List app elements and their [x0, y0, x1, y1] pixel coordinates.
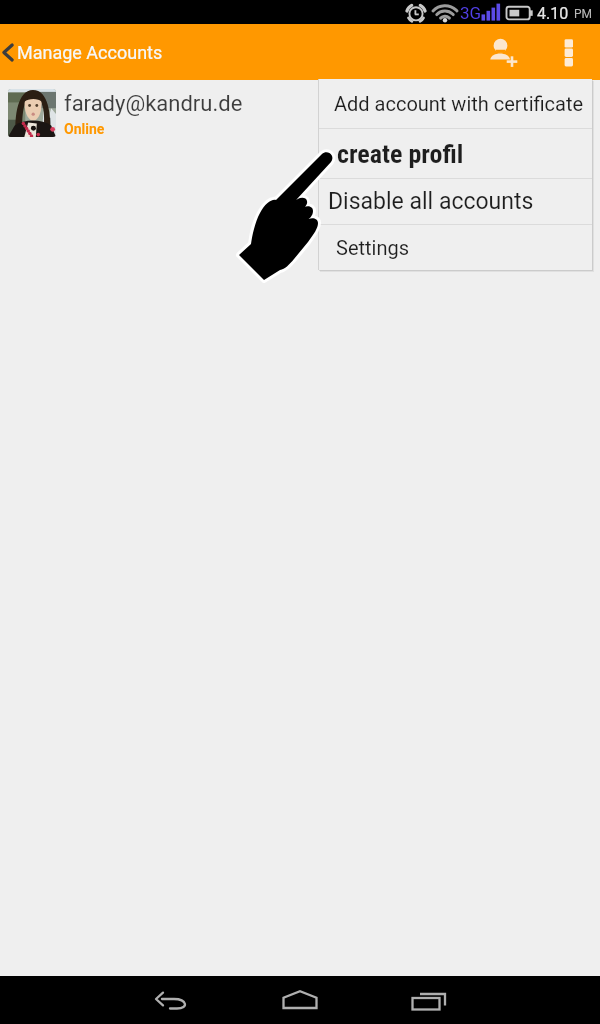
button[interactable]: create profil: [318, 129, 592, 178]
button[interactable]: More options: [545, 24, 593, 80]
button[interactable]: Add account with certificate: [318, 79, 592, 128]
button[interactable]: Home: [274, 976, 326, 1024]
staticText: 4.10: [537, 4, 569, 23]
staticText: Online: [64, 121, 105, 137]
staticText: farady@kandru.de: [64, 91, 243, 117]
button[interactable]: Manage Accounts: [0, 24, 173, 80]
staticText: Settings: [336, 236, 410, 259]
button[interactable]: Back: [146, 976, 198, 1024]
button[interactable]: Disable all accounts: [318, 179, 592, 224]
button[interactable]: Recent apps: [403, 976, 455, 1024]
button[interactable]: farady@kandru.de: [0, 80, 600, 146]
staticText: 3G: [460, 3, 482, 23]
staticText: Add account with certificate: [334, 92, 584, 115]
staticText: Disable all accounts: [328, 188, 534, 215]
button[interactable]: Settings: [318, 225, 592, 270]
staticText: Manage Accounts: [17, 42, 163, 63]
button[interactable]: Add account: [477, 24, 533, 80]
staticText: PM: [574, 7, 593, 21]
staticText: create profil: [337, 139, 464, 169]
